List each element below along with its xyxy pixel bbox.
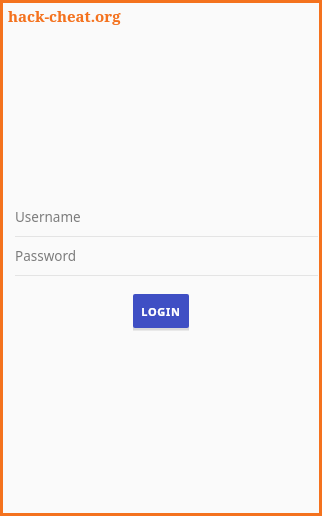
staticText: LOGIN <box>141 304 181 319</box>
button[interactable]: LOGIN <box>133 294 189 328</box>
staticText: Password <box>15 247 77 265</box>
button[interactable]: Username <box>15 198 318 237</box>
staticText: hack-cheat.org <box>8 6 121 26</box>
other: Screenshot frame <box>0 0 322 516</box>
staticText: Username <box>15 208 81 226</box>
button[interactable]: Password <box>15 237 318 276</box>
